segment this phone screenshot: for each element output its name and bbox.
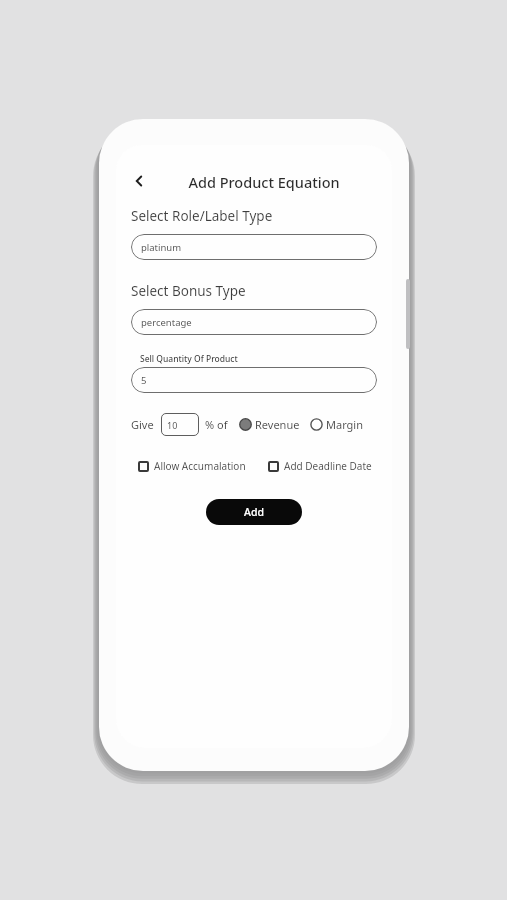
staticText: Sell Quantity Of Product xyxy=(140,353,238,365)
button[interactable]: Add Deadline Date xyxy=(268,459,372,473)
button[interactable]: platinum xyxy=(131,234,377,260)
staticText: Margin xyxy=(326,417,363,432)
staticText: 5 xyxy=(141,374,147,387)
staticText: Select Role/Label Type xyxy=(131,207,273,225)
staticText: percentage xyxy=(141,316,192,329)
button[interactable]: percentage xyxy=(131,309,377,335)
staticText: Revenue xyxy=(255,417,300,432)
button[interactable]: Add xyxy=(206,499,302,525)
staticText: % of xyxy=(205,417,228,432)
staticText: Select Bonus Type xyxy=(131,282,246,300)
button[interactable]: Allow Accumalation xyxy=(138,459,246,473)
staticText: Allow Accumalation xyxy=(154,459,246,473)
staticText: Give xyxy=(131,417,154,432)
staticText: Add xyxy=(244,505,264,519)
button[interactable]: Revenue xyxy=(239,417,300,432)
button[interactable]: Margin xyxy=(310,417,363,432)
staticText: Add Deadline Date xyxy=(284,459,372,473)
staticText: platinum xyxy=(141,241,182,254)
button[interactable]: 10 xyxy=(161,413,199,436)
staticText: 10 xyxy=(167,419,178,431)
button[interactable]: Back xyxy=(124,166,154,196)
button[interactable]: 5 xyxy=(131,367,377,393)
staticText: Add Product Equation xyxy=(164,172,364,192)
